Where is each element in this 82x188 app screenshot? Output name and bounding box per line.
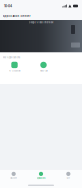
button[interactable]: Video Call bbox=[29, 62, 58, 72]
button[interactable]: Google Video Interview bbox=[0, 20, 82, 52]
button[interactable]: Discover bbox=[0, 172, 27, 179]
button[interactable]: Me bbox=[55, 172, 82, 179]
staticText: Applications bbox=[36, 177, 45, 179]
button[interactable]: AI Credential bbox=[0, 62, 29, 72]
staticText: Google Video Interview bbox=[28, 21, 53, 24]
staticText: Video Call bbox=[40, 70, 47, 72]
staticText: AI Credential bbox=[9, 70, 20, 72]
button[interactable]: Applications bbox=[27, 172, 55, 179]
staticText: 10:04 bbox=[4, 4, 12, 8]
staticText: My Applications bbox=[3, 56, 20, 59]
staticText: Discover bbox=[10, 177, 17, 179]
staticText: Application Center bbox=[2, 14, 30, 17]
staticText: Me bbox=[67, 177, 70, 179]
